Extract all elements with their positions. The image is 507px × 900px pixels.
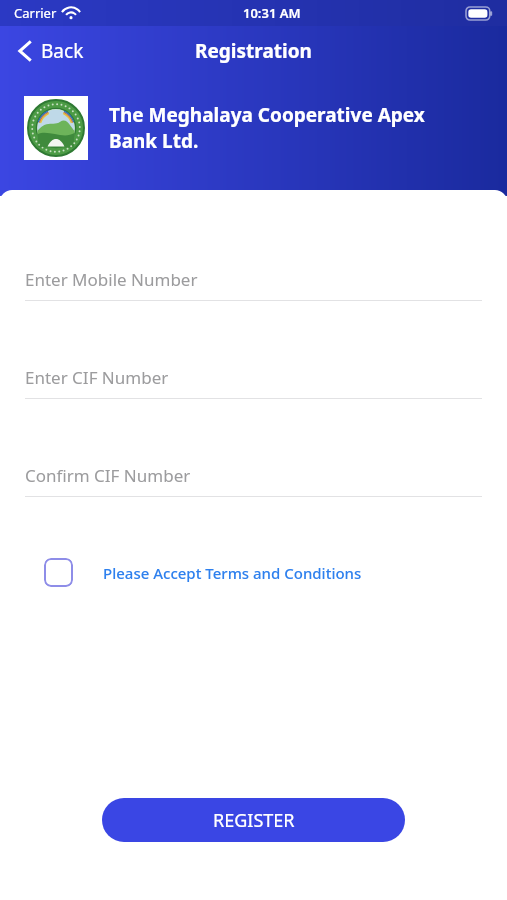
button[interactable]: Confirm CIF Number (25, 464, 482, 497)
button[interactable]: Enter CIF Number (25, 366, 482, 399)
staticText: Back (41, 38, 84, 64)
other: Bank logo (24, 96, 88, 160)
staticText: 10:31 AM (243, 4, 301, 22)
button[interactable]: Enter Mobile Number (25, 268, 482, 301)
staticText: The Meghalaya Cooperative Apex Bank Ltd. (109, 102, 425, 154)
other: Accept terms checkbox (44, 558, 73, 587)
staticText: Confirm CIF Number (25, 464, 191, 487)
staticText: Enter Mobile Number (25, 268, 198, 291)
staticText: Carrier (14, 4, 57, 22)
button[interactable]: Back (14, 34, 88, 68)
staticText: Registration (195, 38, 312, 64)
button[interactable]: Accept terms checkbox (34, 550, 374, 595)
button[interactable]: REGISTER (102, 798, 405, 842)
staticText: Please Accept Terms and Conditions (103, 563, 362, 583)
staticText: Enter CIF Number (25, 366, 169, 389)
staticText: REGISTER (213, 808, 295, 833)
